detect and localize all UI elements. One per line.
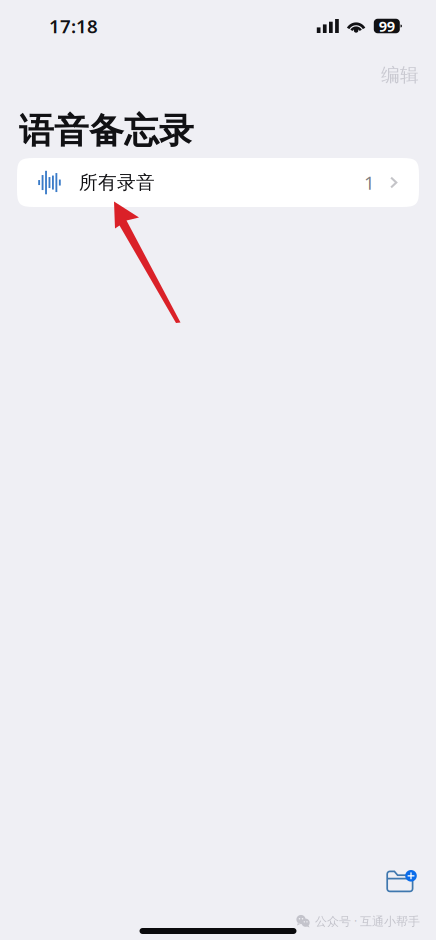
staticText: 编辑 [381, 63, 419, 86]
button[interactable]: 所有录音 [17, 158, 419, 207]
staticText: 1 [364, 170, 375, 195]
staticText: 99 [379, 16, 395, 36]
staticText: 公众号 · 互通小帮手 [315, 913, 420, 929]
button[interactable]: New Folder [378, 862, 425, 901]
button[interactable]: 编辑 [372, 56, 428, 93]
staticText: 17:18 [49, 14, 98, 38]
staticText: 语音备忘录 [19, 110, 194, 152]
staticText: 所有录音 [79, 171, 155, 194]
